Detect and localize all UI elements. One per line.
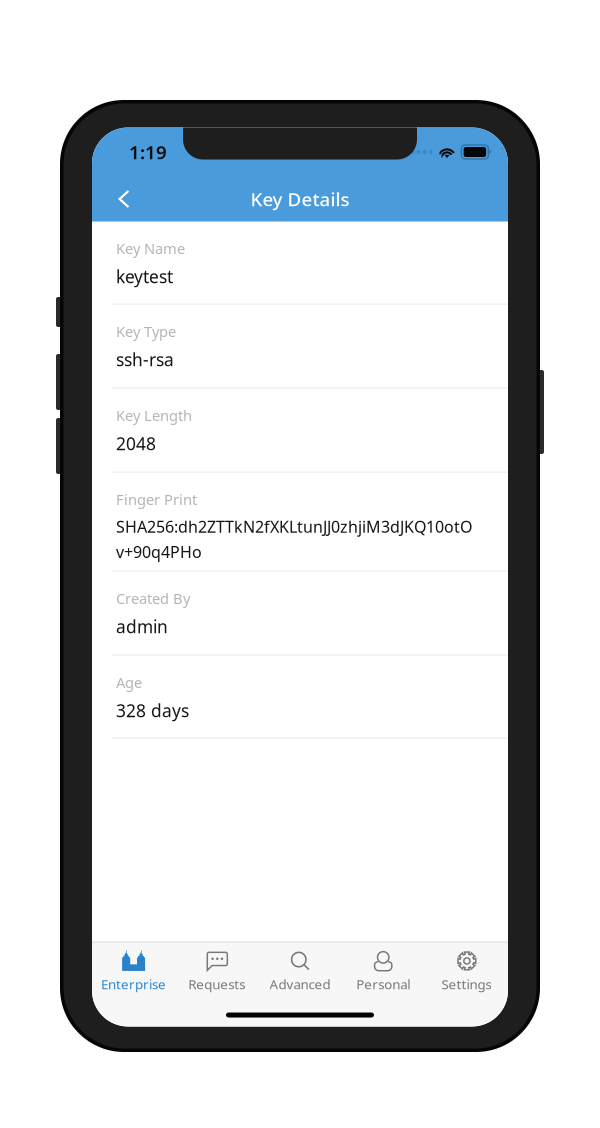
staticText: Age <box>116 672 142 692</box>
staticText: admin <box>116 615 168 638</box>
staticText: 2048 <box>116 432 156 455</box>
staticText: 328 days <box>116 699 189 722</box>
staticText: Key Details <box>250 187 349 211</box>
button[interactable]: Advanced <box>258 942 342 999</box>
button[interactable]: Personal <box>342 942 425 999</box>
staticText: Enterprise <box>101 975 166 993</box>
staticText: Created By <box>116 588 190 608</box>
staticText: Key Length <box>116 405 192 425</box>
staticText: v+90q4PHo <box>116 541 202 562</box>
button[interactable]: Requests <box>175 942 258 999</box>
staticText: keytest <box>116 265 173 288</box>
button[interactable]: Back <box>103 177 145 221</box>
staticText: Finger Print <box>116 489 197 509</box>
staticText: Advanced <box>269 975 330 993</box>
button[interactable]: Settings <box>425 942 508 999</box>
staticText: ssh-rsa <box>116 348 174 371</box>
staticText: Personal <box>356 975 410 993</box>
staticText: 1:19 <box>129 140 167 164</box>
staticText: Key Name <box>116 238 185 258</box>
staticText: Settings <box>441 975 491 993</box>
button[interactable]: Enterprise <box>92 942 175 999</box>
staticText: Key Type <box>116 321 176 341</box>
staticText: SHA256:dh2ZTTkN2fXKLtunJJ0zhjiM3dJKQ10ot… <box>116 516 472 537</box>
staticText: Requests <box>188 975 245 993</box>
